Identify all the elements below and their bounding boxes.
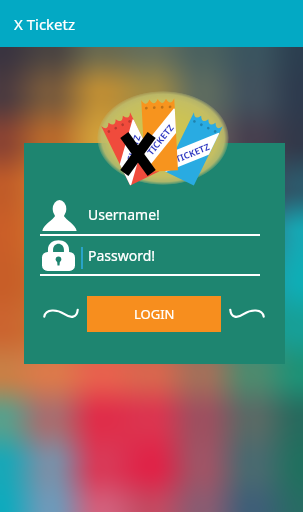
staticText: LOGIN	[134, 305, 175, 323]
staticText: Password!	[88, 246, 156, 265]
staticText: X Ticketz	[14, 14, 76, 34]
staticText: Username!	[88, 205, 160, 224]
button[interactable]: LOGIN	[87, 296, 221, 332]
